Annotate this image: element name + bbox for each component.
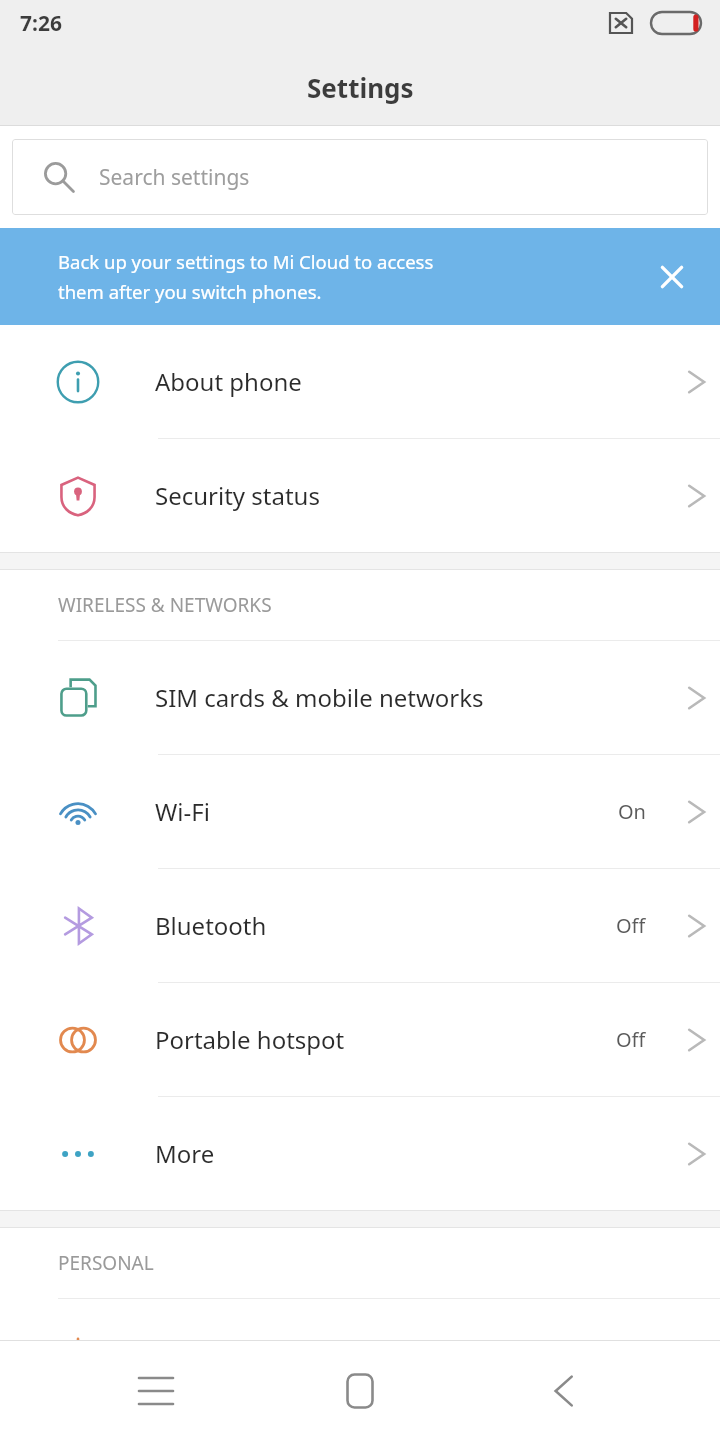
staticText: Off xyxy=(616,912,646,939)
staticText: Security status xyxy=(155,479,668,512)
button[interactable]: Security status xyxy=(0,439,720,552)
staticText: Wi-Fi xyxy=(155,795,618,828)
staticText: Settings xyxy=(307,70,414,105)
button[interactable]: Search settings xyxy=(12,139,708,215)
staticText: them after you switch phones. xyxy=(58,279,322,304)
button[interactable]: Home xyxy=(312,1343,408,1439)
button[interactable]: Back up your settings to Mi Cloud to acc… xyxy=(0,228,720,325)
button[interactable]: Wi-Fi xyxy=(0,755,720,869)
button[interactable]: Recent apps xyxy=(108,1343,204,1439)
staticText: 7:26 xyxy=(20,9,62,38)
button[interactable]: Display xyxy=(0,1299,720,1412)
staticText: PERSONAL xyxy=(58,1250,154,1276)
button[interactable]: About phone xyxy=(0,325,720,439)
button[interactable]: Portable hotspot xyxy=(0,983,720,1097)
staticText: Display xyxy=(155,1339,668,1372)
staticText: Off xyxy=(616,1026,646,1053)
staticText: Search settings xyxy=(99,163,250,192)
staticText: Portable hotspot xyxy=(155,1023,616,1056)
button[interactable]: Close xyxy=(644,249,700,305)
staticText: On xyxy=(618,798,646,825)
button[interactable]: Back xyxy=(516,1343,612,1439)
staticText: More xyxy=(155,1137,668,1170)
button[interactable]: Bluetooth xyxy=(0,869,720,983)
staticText: About phone xyxy=(155,365,668,398)
button[interactable]: More xyxy=(0,1097,720,1210)
staticText: Back up your settings to Mi Cloud to acc… xyxy=(58,249,434,274)
staticText: SIM cards & mobile networks xyxy=(155,681,668,714)
button[interactable]: SIM cards & mobile networks xyxy=(0,641,720,755)
staticText: WIRELESS & NETWORKS xyxy=(58,592,272,618)
staticText: Bluetooth xyxy=(155,909,616,942)
